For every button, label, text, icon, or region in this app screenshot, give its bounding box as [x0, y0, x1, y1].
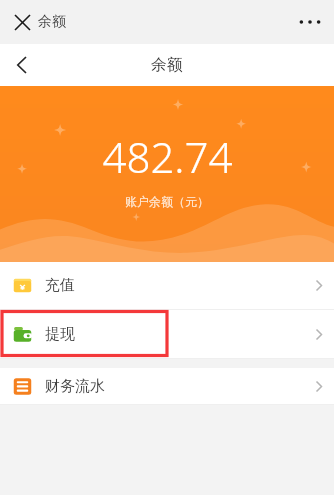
staticText: 财务流水	[45, 377, 105, 396]
staticText: 提现	[45, 325, 75, 344]
staticText: 账户余额（元）	[125, 194, 209, 209]
button[interactable]: Close	[6, 6, 38, 38]
staticText: 余额	[151, 55, 183, 75]
button[interactable]: 财务流水	[0, 368, 334, 404]
button[interactable]: More options	[290, 2, 330, 42]
staticText: 充值	[45, 276, 75, 295]
button[interactable]: Back	[0, 44, 42, 86]
button[interactable]: 充值	[0, 262, 334, 309]
staticText: 余额	[38, 13, 66, 31]
staticText: 482.74	[102, 128, 233, 185]
button[interactable]: 提现	[0, 310, 334, 358]
